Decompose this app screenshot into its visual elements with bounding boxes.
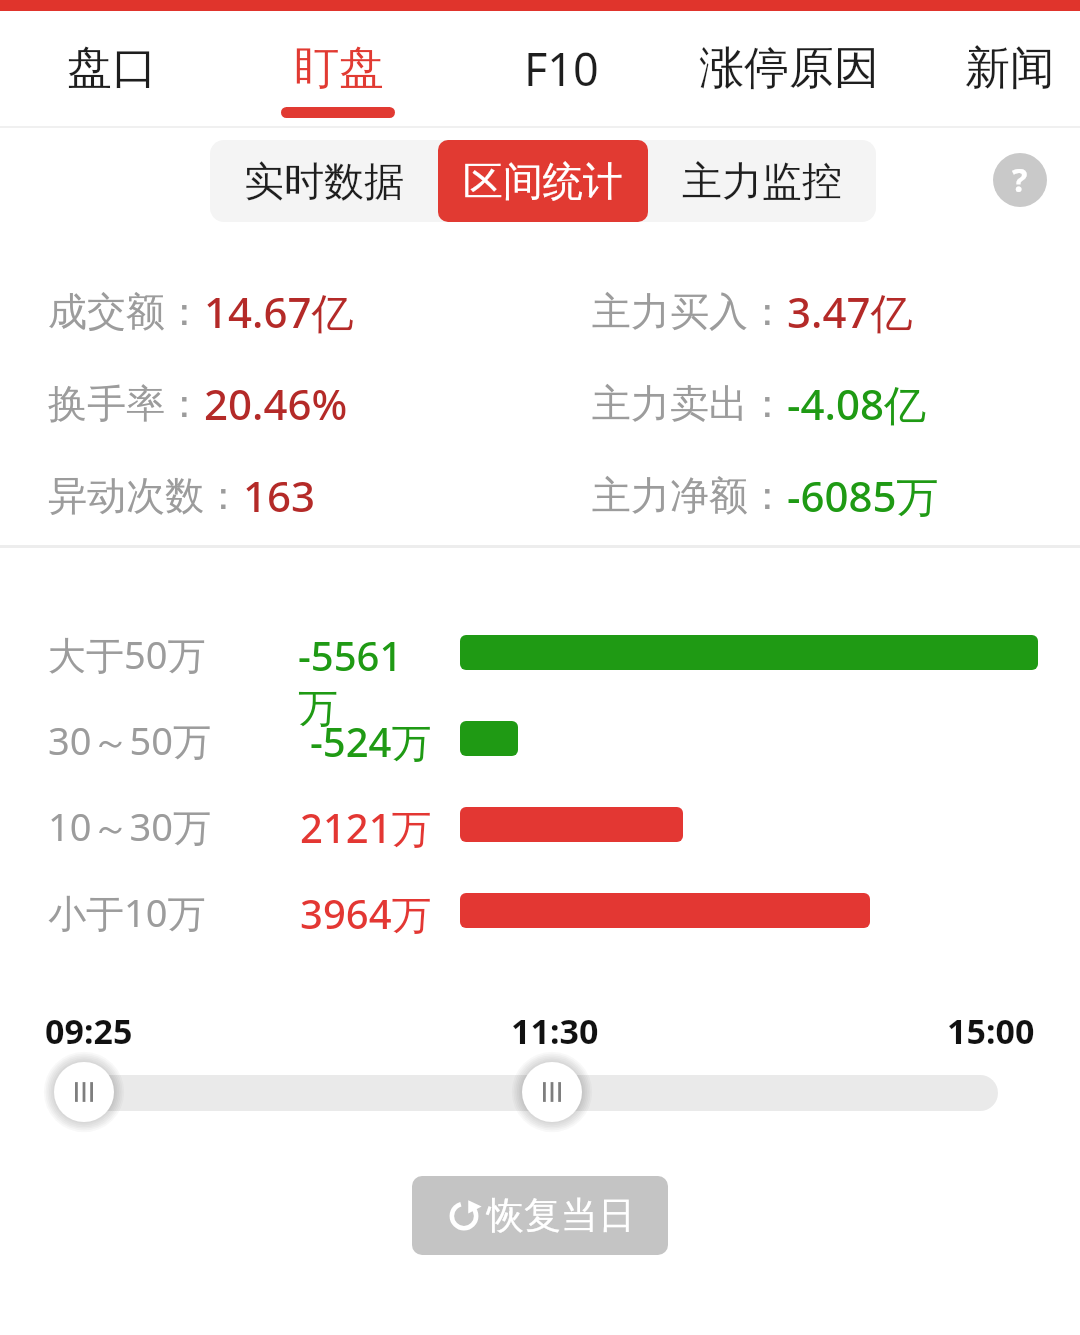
staticText: -4.08亿 <box>787 375 926 432</box>
staticText: 15:00 <box>947 1008 1035 1054</box>
staticText: 主力监控 <box>682 156 842 206</box>
staticText: 成交额： <box>48 287 204 336</box>
staticText: 盯盘 <box>294 40 384 97</box>
staticText: 3.47亿 <box>787 283 913 340</box>
staticText: 09:25 <box>45 1008 133 1054</box>
button[interactable]: 盘口 <box>17 11 207 126</box>
staticText: 恢复当日 <box>487 1192 635 1239</box>
staticText: 异动次数： <box>48 471 243 520</box>
staticText: ? <box>1012 158 1028 202</box>
button[interactable]: 涨停原因 <box>649 11 929 126</box>
staticText: 新闻 <box>965 40 1055 97</box>
staticText: 163 <box>243 467 316 524</box>
staticText: 主力买入： <box>592 287 787 336</box>
button[interactable]: 主力监控 <box>648 140 876 222</box>
staticText: F10 <box>524 38 599 99</box>
staticText: 小于10万 <box>48 886 206 938</box>
staticText: 20.46% <box>204 375 348 432</box>
button[interactable]: 恢复当日 <box>412 1176 668 1255</box>
staticText: 10～30万 <box>48 800 211 852</box>
staticText: 主力净额： <box>592 471 787 520</box>
staticText: 区间统计 <box>463 156 623 206</box>
staticText: 14.67亿 <box>204 283 354 340</box>
staticText: -5561万 <box>298 628 432 734</box>
staticText: 11:30 <box>511 1008 599 1054</box>
button[interactable]: Time range handle <box>51 1059 117 1125</box>
staticText: 换手率： <box>48 379 204 428</box>
staticText: 盘口 <box>67 40 157 97</box>
staticText: 涨停原因 <box>699 40 879 97</box>
button[interactable]: Help <box>993 153 1047 207</box>
button[interactable]: F10 <box>476 11 646 126</box>
staticText: -6085万 <box>787 467 939 524</box>
staticText: 主力卖出： <box>592 379 787 428</box>
button[interactable]: 区间统计 <box>438 140 648 222</box>
button[interactable]: 新闻 <box>930 11 1080 126</box>
staticText: 3964万 <box>300 886 432 941</box>
staticText: -524万 <box>310 714 432 769</box>
button[interactable]: 盯盘 <box>244 11 434 126</box>
button[interactable]: Time range handle <box>519 1059 585 1125</box>
staticText: 大于50万 <box>48 628 206 680</box>
staticText: 30～50万 <box>48 714 211 766</box>
staticText: 实时数据 <box>244 156 404 206</box>
staticText: 2121万 <box>300 800 432 855</box>
button[interactable]: 实时数据 <box>210 140 438 222</box>
